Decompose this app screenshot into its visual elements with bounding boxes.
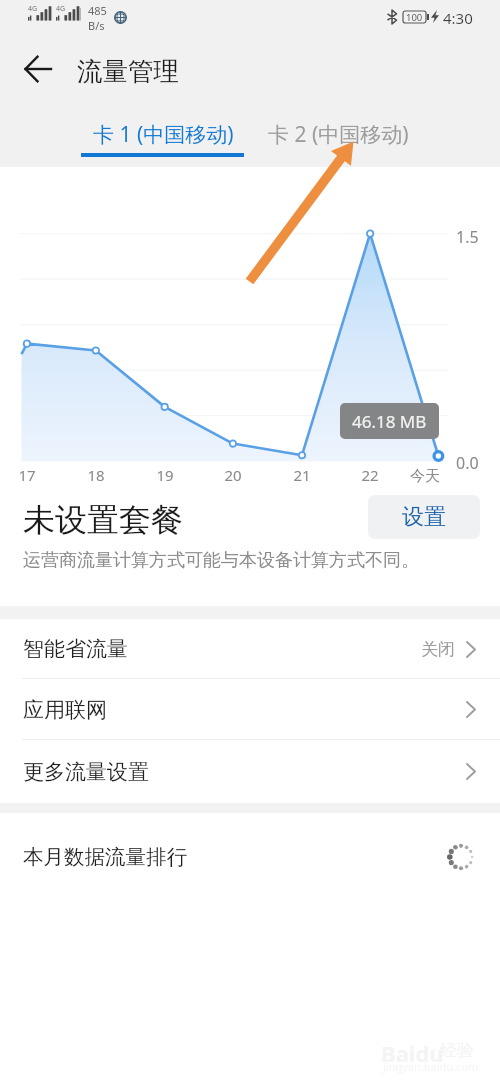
staticText: 未设置套餐: [23, 500, 183, 540]
staticText: 卡 1 (中国移动): [93, 120, 234, 149]
staticText: 485: [88, 3, 107, 18]
staticText: 4:30: [443, 8, 473, 28]
staticText: 本月数据流量排行: [23, 844, 187, 870]
staticText: 46.18 MB: [352, 410, 427, 433]
staticText: 4G: [28, 4, 38, 14]
staticText: B/s: [88, 18, 105, 33]
button[interactable]: 卡 1 (中国移动): [76, 100, 251, 167]
staticText: 4G: [56, 4, 66, 14]
button[interactable]: 更多流量设置: [0, 740, 500, 803]
staticText: 关闭: [421, 639, 455, 660]
button[interactable]: 设置: [368, 495, 480, 539]
staticText: 今天: [410, 467, 440, 486]
staticText: Baidu: [381, 1038, 444, 1068]
staticText: 100: [406, 11, 423, 23]
staticText: 卡 2 (中国移动): [268, 120, 409, 149]
staticText: 运营商流量计算方式可能与本设备计算方式不同。: [23, 549, 419, 572]
staticText: 设置: [402, 503, 446, 531]
staticText: 0.0: [456, 452, 479, 474]
staticText: 智能省流量: [23, 636, 128, 662]
button[interactable]: 本月数据流量排行: [0, 813, 500, 901]
staticText: 21: [293, 465, 311, 485]
button[interactable]: 智能省流量: [0, 619, 500, 679]
staticText: 18: [87, 465, 105, 485]
button[interactable]: Back: [14, 45, 62, 93]
button[interactable]: 应用联网: [0, 679, 500, 740]
staticText: jingyan.baidu.com: [383, 1059, 479, 1074]
button[interactable]: 卡 2 (中国移动): [251, 100, 426, 167]
staticText: 17: [18, 465, 36, 485]
staticText: 22: [361, 465, 379, 485]
staticText: 经验: [440, 1040, 474, 1061]
staticText: 20: [224, 465, 242, 485]
staticText: 19: [156, 465, 174, 485]
staticText: 1.5: [456, 226, 479, 248]
staticText: 更多流量设置: [23, 759, 149, 785]
staticText: 应用联网: [23, 697, 107, 723]
staticText: 流量管理: [77, 55, 179, 87]
